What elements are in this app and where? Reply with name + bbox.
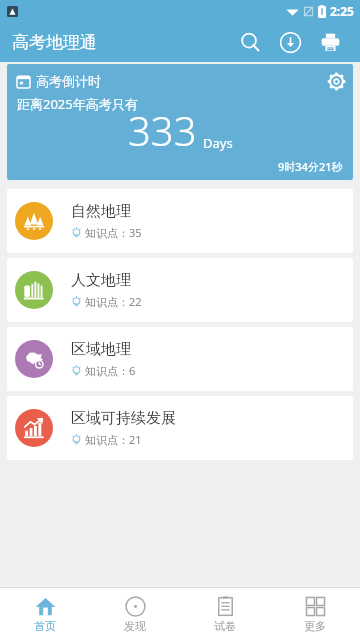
staticText: 试卷 bbox=[214, 619, 236, 633]
staticText: 333 bbox=[128, 103, 197, 157]
button[interactable]: Print bbox=[310, 22, 350, 62]
button[interactable]: Settings bbox=[319, 64, 353, 98]
button[interactable]: 区域可持续发展 bbox=[7, 396, 353, 460]
staticText: 知识点：21 bbox=[85, 432, 142, 447]
staticText: 知识点：22 bbox=[85, 294, 142, 309]
button[interactable]: 试卷 bbox=[180, 588, 270, 640]
button[interactable]: 发现 bbox=[90, 588, 180, 640]
staticText: 高考地理通 bbox=[12, 32, 97, 53]
staticText: 区域可持续发展 bbox=[71, 409, 176, 428]
button[interactable]: 自然地理 bbox=[7, 189, 353, 253]
staticText: 知识点：35 bbox=[85, 225, 142, 240]
staticText: 2:25 bbox=[330, 3, 354, 19]
staticText: 发现 bbox=[124, 619, 146, 633]
staticText: 首页 bbox=[34, 619, 56, 633]
staticText: 知识点：6 bbox=[85, 363, 136, 378]
staticText: 人文地理 bbox=[71, 271, 131, 290]
button[interactable]: 首页 bbox=[0, 588, 90, 640]
staticText: 自然地理 bbox=[71, 202, 131, 221]
staticText: 距离2025年高考只有 bbox=[17, 95, 138, 113]
button[interactable]: Search bbox=[230, 22, 270, 62]
staticText: 区域地理 bbox=[71, 340, 131, 359]
button[interactable]: 高考倒计时 bbox=[7, 64, 353, 180]
button[interactable]: 区域地理 bbox=[7, 327, 353, 391]
staticText: Days bbox=[203, 134, 233, 152]
button[interactable]: 人文地理 bbox=[7, 258, 353, 322]
staticText: 更多 bbox=[304, 619, 326, 633]
staticText: 高考倒计时 bbox=[36, 73, 101, 89]
button[interactable]: Download bbox=[270, 22, 310, 62]
staticText: 9时34分21秒 bbox=[278, 159, 343, 174]
button[interactable]: 更多 bbox=[270, 588, 360, 640]
